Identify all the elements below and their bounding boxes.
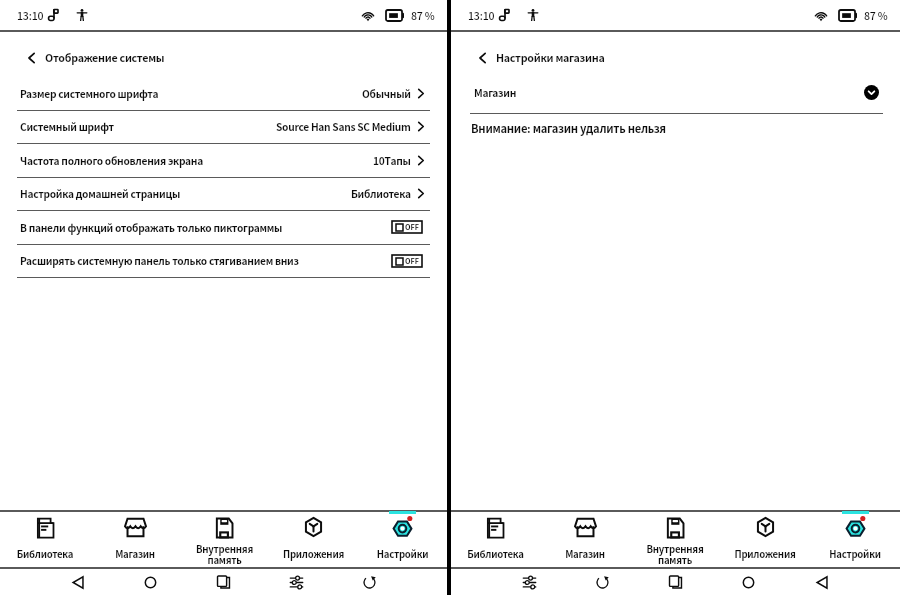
staticText: Расширять системную панель только стягив… — [20, 253, 299, 268]
staticText: Внутренняя память — [180, 542, 269, 567]
staticText: Системный шрифт — [20, 119, 114, 134]
button[interactable]: Внутренняя память — [180, 512, 269, 567]
staticText: Внимание: магазин удалить нельзя — [471, 120, 666, 136]
button[interactable]: Расширять системную панель только стягив… — [0, 245, 447, 278]
button[interactable]: Refresh — [596, 576, 609, 589]
button[interactable]: Библиотека — [0, 512, 90, 567]
button[interactable]: Настройка домашней страницы — [0, 178, 447, 211]
button[interactable]: Settings — [290, 576, 303, 589]
staticText: 13:10 — [468, 8, 495, 23]
staticText: Обычный — [362, 86, 411, 101]
button[interactable]: Библиотека — [451, 512, 540, 567]
staticText: Магазин — [474, 85, 517, 100]
staticText: Магазин — [90, 547, 180, 561]
staticText: Настройки магазина — [496, 50, 605, 65]
staticText: 87 % — [411, 8, 435, 23]
button[interactable]: Магазин — [90, 512, 180, 567]
staticText: Настройки — [358, 547, 447, 561]
staticText: Библиотека — [451, 547, 540, 561]
button[interactable]: Home — [742, 576, 755, 589]
button[interactable]: Back — [71, 576, 84, 589]
staticText: 13:10 — [17, 8, 44, 23]
button[interactable]: Системный шрифт — [0, 111, 447, 144]
button[interactable]: Back — [815, 576, 828, 589]
staticText: OFF — [405, 256, 419, 266]
button[interactable]: Отображение системы — [0, 32, 447, 77]
staticText: Source Han Sans SC Medium — [276, 119, 411, 134]
button[interactable]: Магазин — [540, 512, 630, 567]
button[interactable]: Settings — [523, 576, 536, 589]
staticText: Библиотека — [0, 547, 90, 561]
button[interactable]: Магазин — [451, 77, 900, 114]
staticText: Внутренняя память — [630, 542, 720, 567]
staticText: Приложения — [269, 547, 358, 561]
button[interactable]: Частота полного обновления экрана — [0, 144, 447, 178]
button[interactable]: Refresh — [363, 576, 376, 589]
staticText: Библиотека — [351, 186, 411, 201]
button[interactable]: Приложения — [269, 512, 358, 567]
staticText: 10Tапы — [373, 153, 411, 168]
button[interactable]: В панели функций отображать только пикто… — [0, 211, 447, 245]
staticText: Магазин — [540, 547, 630, 561]
staticText: Частота полного обновления экрана — [20, 153, 203, 168]
button[interactable]: Home — [144, 576, 157, 589]
button[interactable]: Настройки — [358, 512, 447, 567]
button[interactable]: Внутренняя память — [630, 512, 720, 567]
button[interactable]: Приложения — [720, 512, 810, 567]
staticText: 87 % — [864, 8, 888, 23]
staticText: В панели функций отображать только пикто… — [20, 220, 283, 235]
button[interactable]: Настройки магазина — [451, 32, 900, 77]
staticText: Отображение системы — [45, 50, 165, 65]
button[interactable]: Настройки — [810, 512, 900, 567]
other: Expand — [864, 85, 879, 100]
button[interactable]: Recents — [217, 576, 230, 589]
staticText: OFF — [405, 222, 419, 232]
staticText: Настройка домашней страницы — [20, 186, 180, 201]
staticText: Приложения — [720, 547, 810, 561]
button[interactable]: Recents — [669, 576, 682, 589]
button[interactable]: Размер системного шрифта — [0, 77, 447, 111]
staticText: Настройки — [810, 547, 900, 561]
staticText: Размер системного шрифта — [20, 86, 159, 101]
